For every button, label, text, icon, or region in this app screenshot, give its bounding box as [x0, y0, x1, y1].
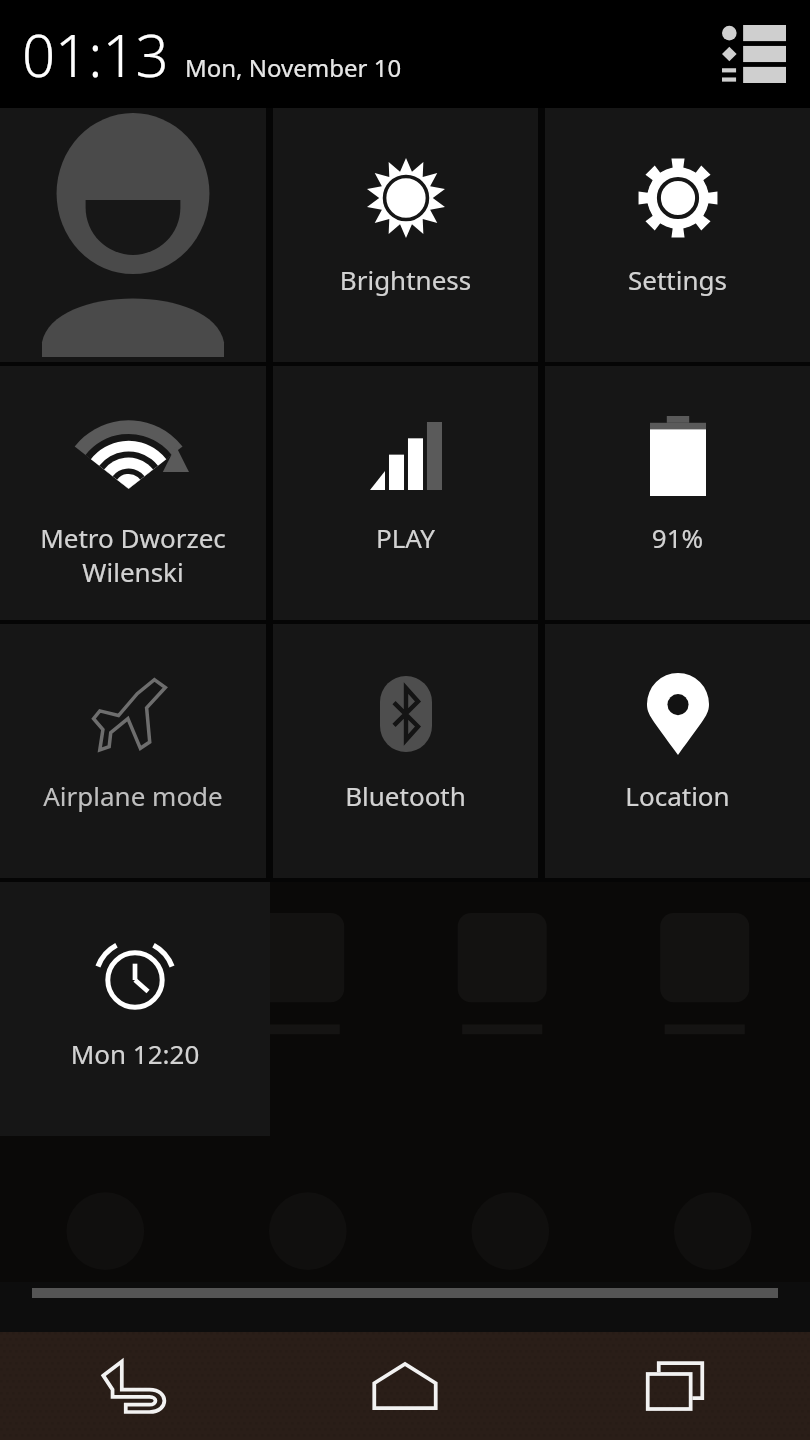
button[interactable]: Metro Dworzec Wilenski	[0, 366, 266, 620]
staticText: Bluetooth	[279, 778, 532, 813]
button[interactable]: Bluetooth	[273, 624, 538, 878]
staticText: PLAY	[279, 520, 532, 555]
staticText: Airplane mode	[6, 778, 260, 813]
button[interactable]: Collapse panel	[0, 1282, 810, 1332]
button[interactable]: PLAY	[273, 366, 538, 620]
staticText: 01:13	[22, 15, 169, 94]
staticText: Mon, November 10	[185, 51, 402, 84]
button[interactable]: Notifications	[722, 25, 786, 83]
button[interactable]: User profile	[0, 108, 266, 362]
button[interactable]: Recent apps	[540, 1332, 810, 1440]
staticText: Metro Dworzec Wilenski	[6, 520, 260, 589]
button[interactable]: Location	[545, 624, 810, 878]
staticText: Mon 12:20	[6, 1036, 264, 1071]
button[interactable]: Settings	[545, 108, 810, 362]
button[interactable]: Airplane mode	[0, 624, 266, 878]
button[interactable]: Mon 12:20	[0, 882, 270, 1136]
button[interactable]: Home	[270, 1332, 540, 1440]
staticText: Brightness	[279, 262, 532, 297]
staticText: Settings	[551, 262, 804, 297]
button[interactable]: Back	[0, 1332, 270, 1440]
staticText: Location	[551, 778, 804, 813]
button[interactable]: 91%	[545, 366, 810, 620]
staticText: 91%	[551, 520, 804, 555]
button[interactable]: Brightness	[273, 108, 538, 362]
